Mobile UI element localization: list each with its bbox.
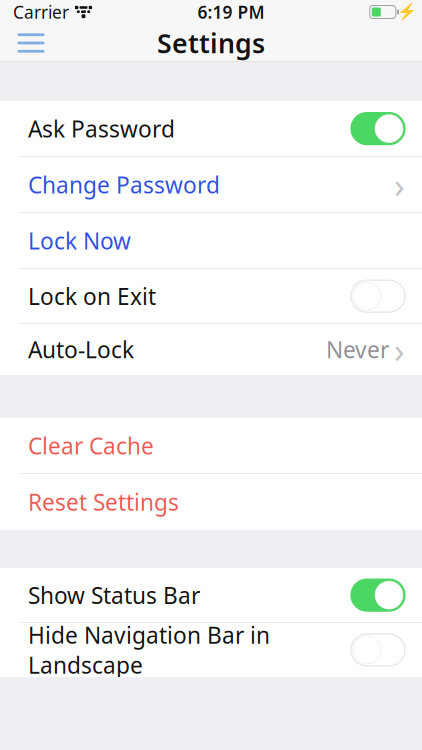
button[interactable]: Show Status Bar <box>0 568 422 623</box>
button[interactable]: Menu <box>6 24 56 62</box>
button[interactable]: Lock Now <box>0 213 422 269</box>
staticText: › <box>394 162 405 208</box>
staticText: › <box>394 326 405 372</box>
staticText: Reset Settings <box>28 487 179 517</box>
staticText: Show Status Bar <box>28 580 200 610</box>
staticText: 6:19 PM <box>197 0 264 23</box>
button[interactable]: Clear Cache <box>0 418 422 474</box>
button[interactable]: Ask Password <box>0 101 422 157</box>
staticText: Hide Navigation Bar in Landscape <box>28 620 270 680</box>
staticText: Auto-Lock <box>28 334 134 364</box>
staticText: Clear Cache <box>28 430 154 461</box>
staticText: Never <box>326 334 389 364</box>
staticText: ⚡ <box>397 3 417 21</box>
staticText: Settings <box>157 25 265 61</box>
button[interactable]: Hide Navigation Bar in Landscape <box>0 623 422 677</box>
staticText: Lock on Exit <box>28 281 156 311</box>
staticText: Ask Password <box>28 113 175 144</box>
staticText: Lock Now <box>28 225 131 256</box>
staticText: Change Password <box>28 169 220 200</box>
button[interactable]: Change Password <box>0 157 422 213</box>
button[interactable]: Lock on Exit <box>0 269 422 324</box>
button[interactable]: Reset Settings <box>0 474 422 530</box>
button[interactable]: Auto-Lock <box>0 324 422 375</box>
staticText: Carrier <box>13 0 69 23</box>
